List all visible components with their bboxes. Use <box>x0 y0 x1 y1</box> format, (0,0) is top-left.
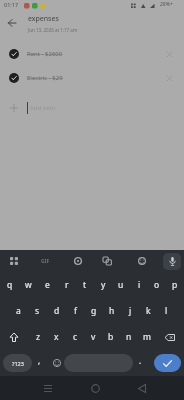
button[interactable]: n <box>120 324 138 350</box>
staticText: e <box>45 279 50 291</box>
staticText: i <box>138 279 141 291</box>
button[interactable] <box>91 384 100 393</box>
button[interactable]: Add item <box>0 98 184 118</box>
button[interactable] <box>138 384 146 393</box>
button[interactable]: , <box>38 355 41 366</box>
button[interactable] <box>163 253 181 270</box>
button[interactable]: x <box>47 324 66 350</box>
staticText: q <box>7 279 13 291</box>
button[interactable] <box>64 354 133 372</box>
button[interactable]: Rent - $2600 <box>0 44 184 64</box>
staticText: u <box>118 279 124 291</box>
button[interactable] <box>10 257 18 265</box>
button[interactable] <box>167 52 172 57</box>
button[interactable]: g <box>85 298 103 324</box>
button[interactable]: d <box>47 298 66 324</box>
staticText: h <box>109 305 115 317</box>
button[interactable]: f <box>66 298 85 324</box>
staticText: x <box>54 331 59 343</box>
button[interactable]: e <box>38 272 57 298</box>
staticText: o <box>154 279 160 291</box>
button[interactable]: o <box>148 272 166 298</box>
button[interactable]: j <box>121 298 139 324</box>
staticText: j <box>129 305 132 317</box>
button[interactable]: c <box>66 324 84 350</box>
button[interactable]: b <box>102 324 120 350</box>
button[interactable] <box>4 15 20 31</box>
button[interactable]: GIF <box>41 258 50 265</box>
staticText: z <box>36 331 40 343</box>
button[interactable] <box>0 324 28 350</box>
button[interactable] <box>167 76 172 81</box>
staticText: 01:17 <box>4 1 19 8</box>
button[interactable] <box>44 385 52 392</box>
staticText: d <box>54 305 60 317</box>
staticText: Rent - $2600 <box>27 50 63 58</box>
staticText: n <box>126 331 132 343</box>
staticText: g <box>91 305 97 317</box>
staticText: l <box>165 305 168 317</box>
button[interactable]: ?123 <box>3 354 32 372</box>
button[interactable] <box>138 257 146 265</box>
staticText: t <box>83 279 87 291</box>
staticText: k <box>146 305 151 317</box>
button[interactable]: r <box>57 272 76 298</box>
button[interactable] <box>74 257 82 265</box>
staticText: v <box>91 331 96 343</box>
staticText: 29%+ <box>160 1 173 8</box>
button[interactable]: p <box>166 272 184 298</box>
button[interactable]: . <box>139 355 142 366</box>
button[interactable] <box>154 354 181 372</box>
button[interactable] <box>103 257 112 265</box>
staticText: Jun 13, 2026 at 1:17 am <box>28 27 78 33</box>
button[interactable]: s <box>28 298 47 324</box>
staticText: Electric - $29 <box>27 74 63 82</box>
button[interactable]: h <box>103 298 121 324</box>
staticText: ?123 <box>12 360 24 367</box>
button[interactable]: q <box>0 272 19 298</box>
button[interactable]: i <box>130 272 148 298</box>
button[interactable]: a <box>9 298 28 324</box>
staticText: m <box>143 331 151 343</box>
button[interactable]: Electric - $29 <box>0 68 184 88</box>
staticText: s <box>35 305 40 317</box>
button[interactable] <box>53 359 61 367</box>
staticText: expenses <box>28 14 59 24</box>
button[interactable]: y <box>94 272 112 298</box>
staticText: p <box>172 279 178 291</box>
button[interactable]: u <box>112 272 130 298</box>
button[interactable]: m <box>138 324 156 350</box>
button[interactable]: k <box>139 298 157 324</box>
button[interactable] <box>156 324 184 350</box>
staticText: y <box>101 279 106 291</box>
staticText: b <box>108 331 114 343</box>
staticText: c <box>73 331 78 343</box>
staticText: Add item <box>30 104 56 112</box>
staticText: r <box>65 279 69 291</box>
staticText: w <box>25 279 32 291</box>
button[interactable]: v <box>84 324 102 350</box>
button[interactable]: t <box>76 272 94 298</box>
button[interactable]: w <box>19 272 38 298</box>
staticText: f <box>74 305 77 317</box>
staticText: a <box>16 305 21 317</box>
button[interactable]: l <box>157 298 175 324</box>
button[interactable]: z <box>28 324 47 350</box>
